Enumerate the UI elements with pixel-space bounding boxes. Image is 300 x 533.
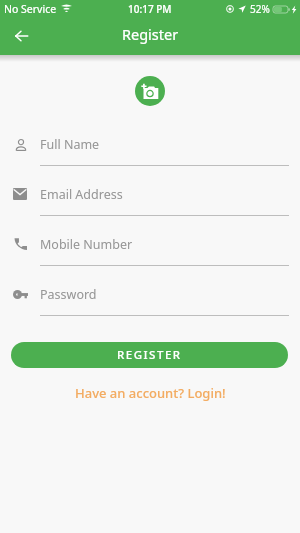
staticText: Full Name (40, 136, 100, 153)
button[interactable]: Add profile photo (135, 76, 165, 106)
button[interactable]: REGISTER (11, 342, 288, 368)
staticText: 10:17 PM (128, 2, 172, 16)
button[interactable]: Mobile Number (0, 220, 300, 270)
button[interactable]: Full Name (0, 120, 300, 170)
staticText: Email Address (40, 186, 123, 203)
staticText: Password (40, 286, 97, 303)
button[interactable]: Email Address (0, 170, 300, 220)
button[interactable]: Back (6, 20, 37, 51)
staticText: No Service (4, 2, 57, 16)
staticText: Have an account? Login! (75, 384, 226, 402)
staticText: Register (122, 24, 179, 44)
staticText: 52% (250, 2, 270, 16)
button[interactable]: Password (0, 270, 300, 320)
button[interactable]: Have an account? Login! (65, 382, 236, 404)
staticText: Mobile Number (40, 236, 133, 253)
staticText: REGISTER (117, 347, 182, 363)
